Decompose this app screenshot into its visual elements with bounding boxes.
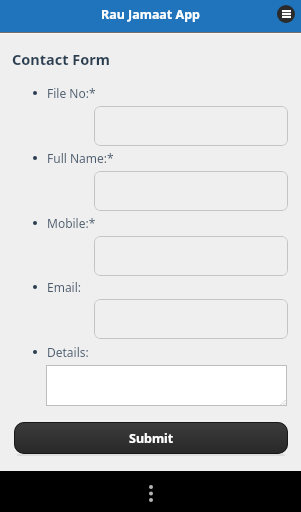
staticText: Full Name:* [47,150,114,166]
button[interactable]: Submit [14,422,288,454]
staticText: Rau Jamaat App [101,6,200,23]
button[interactable]: Full Name:* [94,171,288,211]
staticText: Submit [129,430,174,447]
staticText: File No:* [47,85,96,101]
button[interactable]: Details text area [46,365,287,406]
staticText: Email: [47,279,82,295]
staticText: Contact Form [12,49,110,69]
button[interactable]: File No:* [94,106,288,146]
button[interactable]: More options [138,480,164,506]
button[interactable]: Mobile:* [94,236,288,276]
staticText: Details: [47,344,89,360]
button[interactable]: Email: [94,299,288,339]
staticText: Mobile:* [47,215,96,231]
button[interactable]: Open navigation menu [277,5,295,23]
